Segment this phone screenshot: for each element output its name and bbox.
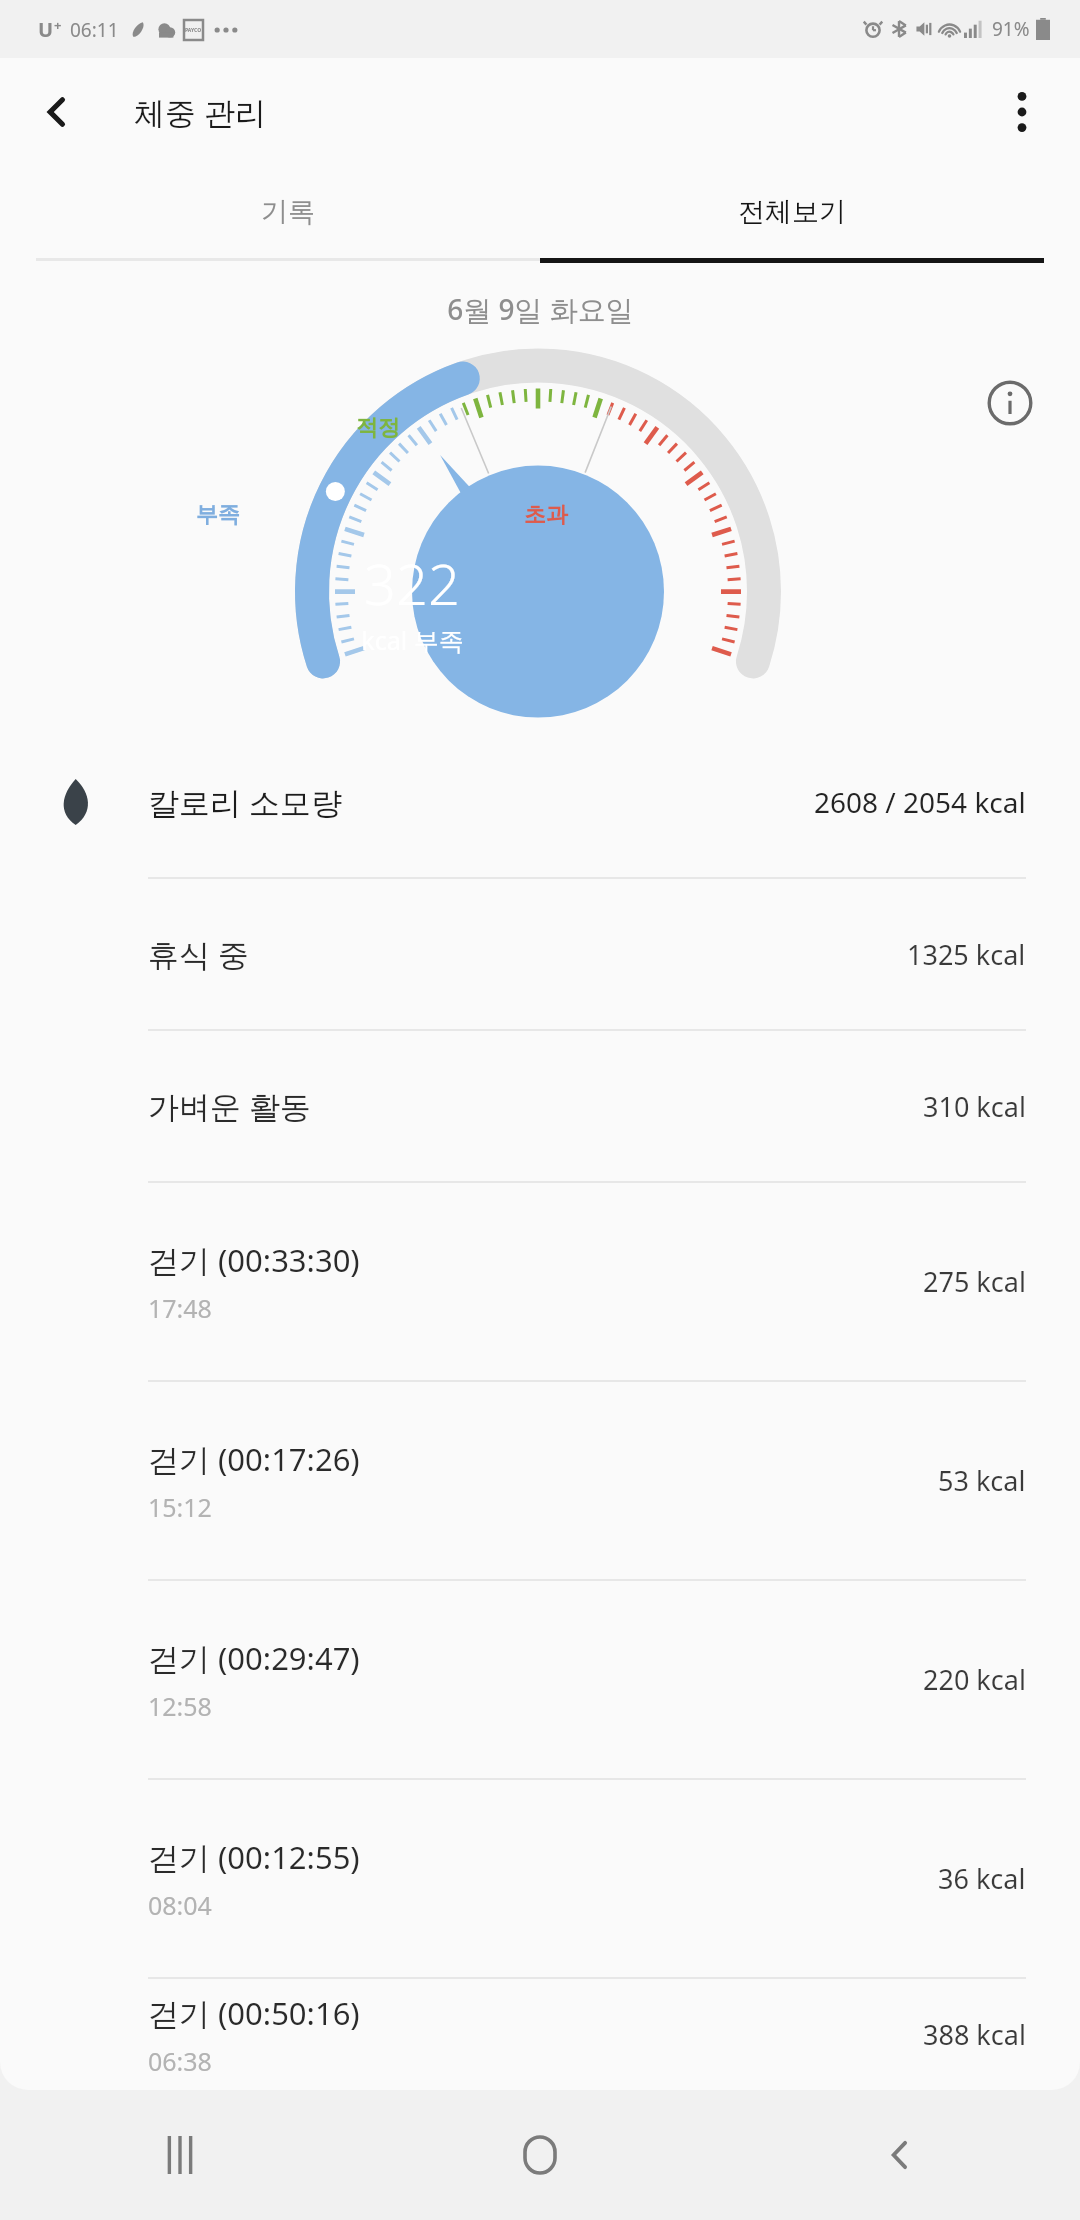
staticText: 322 [364,545,460,621]
staticText: 칼로리 소모량 [148,781,343,823]
button[interactable]: 걷기 (00:29:47) [0,1581,1080,1778]
staticText: 310 kcal [923,1088,1026,1125]
button[interactable]: 전체보기 [540,166,1044,258]
staticText: + [54,16,62,34]
staticText: U [38,16,54,43]
staticText: 1325 kcal [907,936,1026,973]
staticText: 걷기 (00:29:47) [148,1637,360,1679]
button[interactable]: 걷기 (00:50:16) [0,1979,1080,2090]
button[interactable]: 칼로리 소모량 [0,727,1080,877]
staticText: 53 kcal [938,1462,1026,1499]
staticText: kcal 부족 [361,623,464,657]
staticText: 220 kcal [923,1661,1026,1698]
staticText: 06:38 [148,2044,212,2078]
staticText: 휴식 중 [148,933,250,975]
button[interactable]: 걷기 (00:12:55) [0,1780,1080,1977]
button[interactable]: Recent apps [0,2090,360,2220]
staticText: 388 kcal [923,2016,1026,2053]
button[interactable]: 걷기 (00:17:26) [0,1382,1080,1579]
staticText: 체중 관리 [134,91,267,133]
staticText: 15:12 [148,1490,212,1524]
staticText: 가벼운 활동 [148,1085,312,1127]
staticText: 275 kcal [923,1263,1026,1300]
staticText: 걷기 (00:50:16) [148,1992,360,2034]
staticText: 17:48 [148,1291,212,1325]
button[interactable]: 휴식 중 [0,879,1080,1029]
staticText: 36 kcal [938,1860,1026,1897]
staticText: 12:58 [148,1689,212,1723]
button[interactable]: 기록 [36,166,540,258]
button[interactable]: Back [22,77,92,147]
staticText: 2608 / 2054 kcal [814,783,1026,821]
button[interactable]: 걷기 (00:33:30) [0,1183,1080,1380]
staticText: 91% [992,16,1030,42]
staticText: 걷기 (00:33:30) [148,1239,360,1281]
staticText: 걷기 (00:12:55) [148,1836,360,1878]
staticText: 08:04 [148,1888,212,1922]
button[interactable]: Home [360,2090,720,2220]
button[interactable]: More options [986,76,1058,148]
button[interactable]: 가벼운 활동 [0,1031,1080,1181]
staticText: PAYCO [185,27,202,34]
staticText: 전체보기 [738,195,846,229]
staticText: 기록 [261,195,315,229]
staticText: 6월 9일 화요일 [447,290,634,328]
staticText: 걷기 (00:17:26) [148,1438,360,1480]
staticText: 초과 [524,501,568,529]
button[interactable]: Information [974,367,1046,439]
staticText: 06:11 [70,17,119,43]
staticText: 부족 [196,501,240,529]
staticText: 적정 [356,414,400,442]
button[interactable]: Back [720,2090,1080,2220]
